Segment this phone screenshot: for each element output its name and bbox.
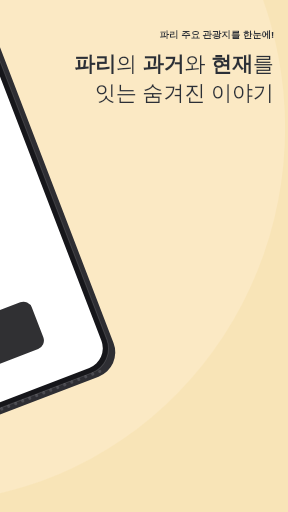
button[interactable]: 파리의 과거와 현재를 잇는 숨겨진 이야기 소개 화면 xyxy=(0,0,288,512)
